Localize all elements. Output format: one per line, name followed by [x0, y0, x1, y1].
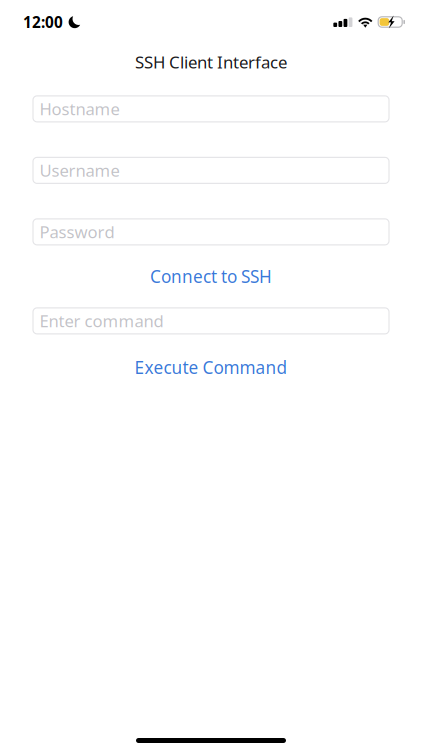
staticText: Connect to SSH: [150, 265, 272, 288]
button[interactable]: Execute Command: [33, 357, 389, 377]
staticText: Password: [39, 220, 114, 243]
staticText: SSH Client Interface: [135, 50, 287, 73]
staticText: Execute Command: [134, 356, 287, 379]
staticText: Username: [39, 159, 119, 182]
button[interactable]: Username: [33, 157, 389, 183]
staticText: Enter command: [39, 309, 163, 332]
button[interactable]: Password: [33, 219, 389, 245]
staticText: 12:00: [23, 12, 63, 32]
button[interactable]: Hostname: [33, 96, 389, 122]
button[interactable]: Enter command: [33, 308, 389, 334]
staticText: Hostname: [39, 97, 119, 120]
button[interactable]: Connect to SSH: [33, 266, 389, 286]
